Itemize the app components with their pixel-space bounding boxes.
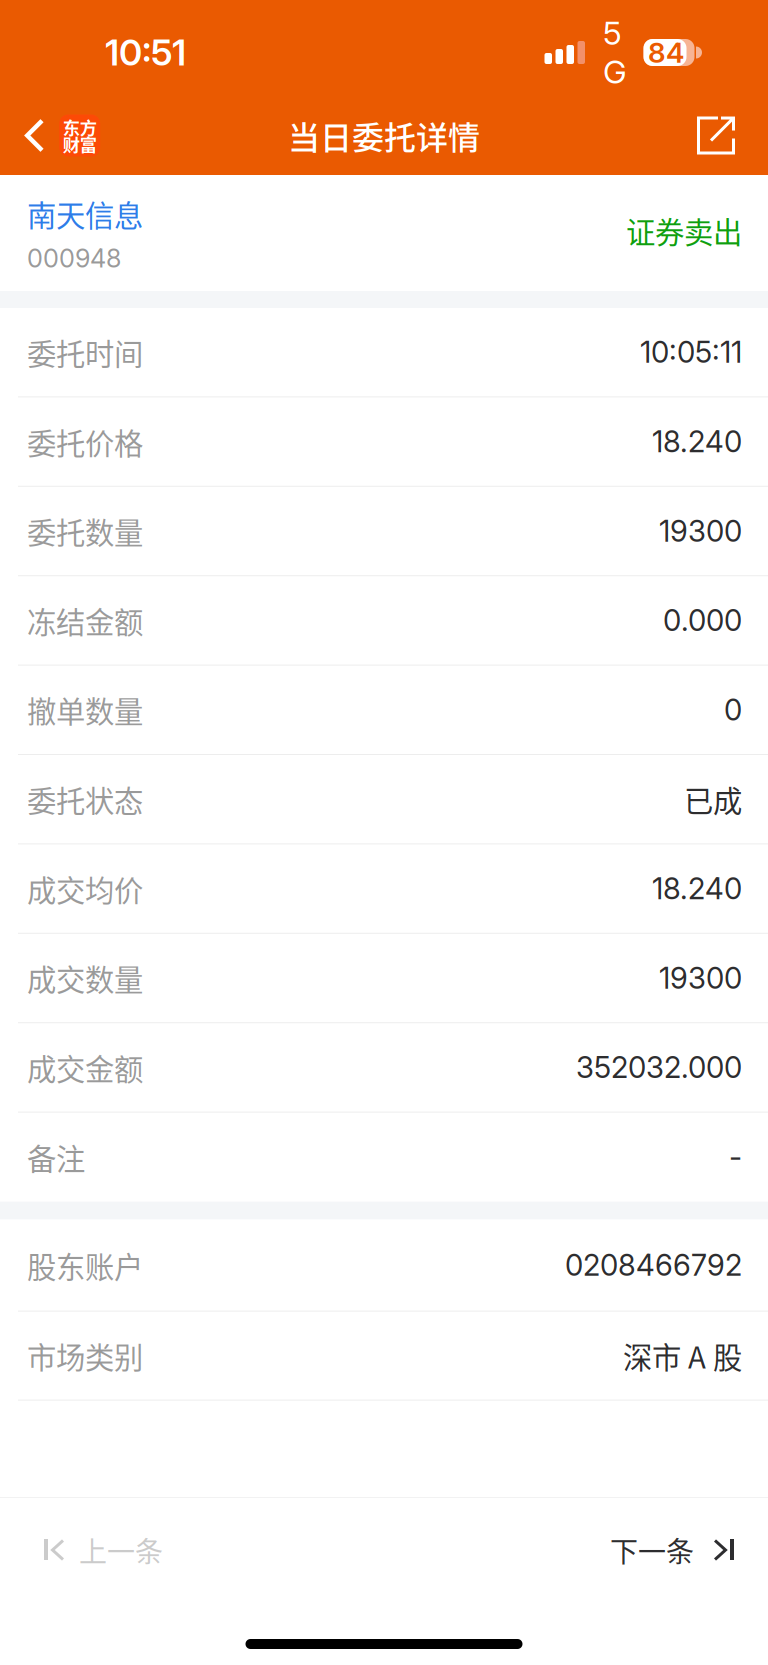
staticText: 10:51 bbox=[105, 31, 186, 74]
staticText: 10:05:11 bbox=[640, 334, 742, 370]
staticText: 0.000 bbox=[663, 603, 742, 638]
staticText: 18.240 bbox=[652, 871, 742, 906]
staticText: 委托价格 bbox=[27, 420, 143, 463]
staticText: 深市 A 股 bbox=[623, 1334, 742, 1377]
staticText: 上一条 bbox=[79, 1530, 163, 1570]
staticText: 冻结金额 bbox=[27, 599, 143, 642]
staticText: 委托状态 bbox=[27, 778, 143, 820]
staticText: 证券卖出 bbox=[626, 209, 742, 252]
staticText: 5G bbox=[603, 14, 627, 91]
staticText: 委托数量 bbox=[27, 510, 143, 552]
staticText: 0208466792 bbox=[565, 1247, 742, 1283]
staticText: 成交金额 bbox=[27, 1046, 143, 1089]
staticText: 撤单数量 bbox=[27, 689, 143, 731]
button[interactable]: 上一条 bbox=[0, 1498, 193, 1602]
button[interactable]: 下一条 bbox=[580, 1498, 768, 1602]
staticText: 备注 bbox=[27, 1136, 85, 1178]
button[interactable]: Share bbox=[673, 96, 768, 175]
staticText: 成交均价 bbox=[27, 867, 143, 910]
staticText: 下一条 bbox=[610, 1530, 694, 1570]
staticText: 19300 bbox=[659, 513, 742, 549]
staticText: 已成 bbox=[684, 778, 742, 820]
staticText: 委托时间 bbox=[27, 331, 143, 373]
staticText: 当日委托详情 bbox=[288, 112, 480, 159]
staticText: 000948 bbox=[27, 243, 121, 274]
staticText: 84 bbox=[648, 36, 684, 69]
staticText: 352032.000 bbox=[576, 1050, 742, 1085]
staticText: 南天信息 bbox=[27, 192, 143, 235]
button[interactable]: Back bbox=[0, 96, 116, 175]
staticText: 成交数量 bbox=[27, 957, 143, 999]
staticText: 财富 bbox=[63, 131, 97, 157]
staticText: 18.240 bbox=[652, 424, 742, 459]
staticText: 东方 bbox=[63, 114, 97, 140]
staticText: 市场类别 bbox=[27, 1334, 143, 1377]
staticText: 股东账户 bbox=[27, 1244, 143, 1286]
staticText: 19300 bbox=[659, 960, 742, 996]
staticText: - bbox=[729, 1139, 742, 1175]
staticText: 0 bbox=[724, 692, 742, 728]
